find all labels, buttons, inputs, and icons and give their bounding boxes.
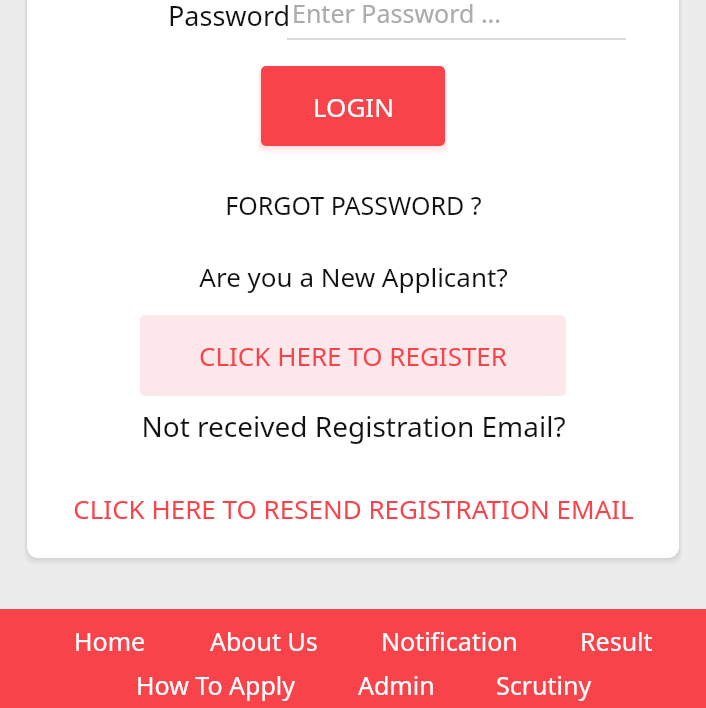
button[interactable]: Result: [572, 619, 661, 663]
staticText: CLICK HERE TO RESEND REGISTRATION EMAIL: [73, 491, 634, 526]
button[interactable]: FORGOT PASSWORD ?: [0, 186, 706, 224]
staticText: Notification: [381, 624, 518, 658]
staticText: FORGOT PASSWORD ?: [225, 188, 482, 222]
button[interactable]: Admin: [350, 663, 443, 707]
staticText: How To Apply: [136, 668, 296, 702]
staticText: About Us: [210, 624, 318, 658]
button[interactable]: Enter Password ...: [287, 0, 626, 40]
staticText: Are you a New Applicant?: [199, 259, 508, 294]
button[interactable]: LOGIN: [261, 66, 445, 146]
staticText: Not received Registration Email?: [141, 407, 566, 445]
button[interactable]: CLICK HERE TO RESEND REGISTRATION EMAIL: [0, 488, 706, 528]
staticText: Password: [168, 0, 291, 34]
staticText: Scrutiny: [496, 668, 592, 702]
button[interactable]: Home: [66, 619, 154, 663]
staticText: Enter Password ...: [292, 0, 501, 30]
button[interactable]: Notification: [373, 619, 526, 663]
staticText: Admin: [358, 668, 435, 702]
staticText: Result: [580, 624, 653, 658]
staticText: Home: [74, 624, 146, 658]
button[interactable]: How To Apply: [128, 663, 304, 707]
button[interactable]: CLICK HERE TO REGISTER: [140, 315, 566, 396]
staticText: CLICK HERE TO REGISTER: [199, 338, 507, 373]
button[interactable]: Scrutiny: [488, 663, 600, 707]
staticText: LOGIN: [313, 89, 394, 124]
button[interactable]: About Us: [202, 619, 326, 663]
